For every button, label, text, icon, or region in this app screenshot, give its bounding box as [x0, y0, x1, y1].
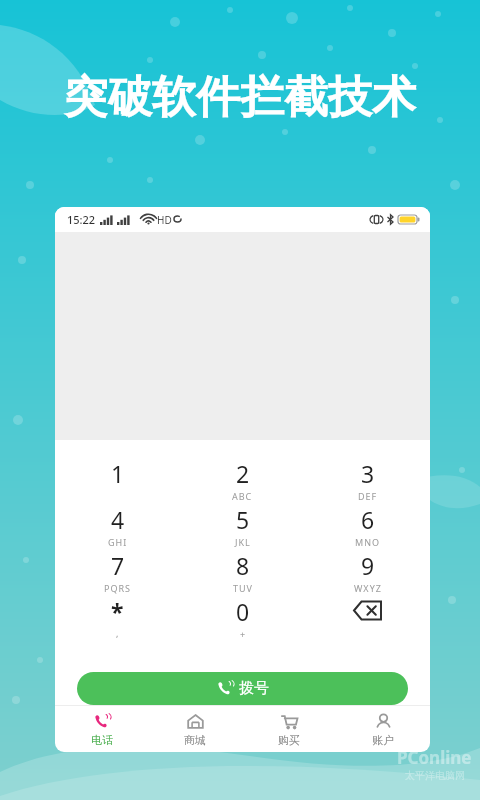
button[interactable]: 9: [305, 550, 430, 596]
staticText: 7: [111, 550, 125, 581]
staticText: 4: [111, 504, 125, 535]
staticText: 电话: [91, 733, 113, 747]
staticText: *: [111, 596, 124, 627]
button[interactable]: 7: [55, 550, 180, 596]
button[interactable]: 0: [180, 596, 305, 642]
staticText: 购买: [278, 733, 300, 747]
staticText: MNO: [355, 536, 381, 548]
staticText: 拨号: [239, 679, 269, 698]
button[interactable]: 拨号: [77, 672, 408, 705]
staticText: 2: [236, 458, 250, 489]
staticText: 1: [111, 458, 125, 489]
button[interactable]: 2: [180, 458, 305, 504]
staticText: PConline: [397, 746, 472, 769]
staticText: 6: [361, 504, 375, 535]
staticText: JKL: [235, 536, 251, 548]
staticText: 突破软件拦截技术: [64, 70, 416, 125]
staticText: 0: [236, 596, 250, 627]
button[interactable]: 3: [305, 458, 430, 504]
staticText: +: [240, 628, 246, 640]
button[interactable]: 5: [180, 504, 305, 550]
button[interactable]: *: [55, 596, 180, 642]
staticText: ,: [116, 627, 119, 639]
staticText: TUV: [233, 582, 253, 594]
staticText: ABC: [232, 490, 253, 502]
staticText: PQRS: [104, 582, 132, 594]
staticText: DEF: [358, 490, 378, 502]
staticText: 9: [361, 550, 375, 581]
staticText: 商城: [184, 733, 206, 747]
staticText: 太平洋电脑网: [405, 769, 465, 782]
staticText: 15:22: [67, 212, 96, 227]
staticText: 账户: [372, 733, 394, 747]
button[interactable]: 4: [55, 504, 180, 550]
staticText: 8: [236, 550, 250, 581]
button[interactable]: 商城: [148, 706, 242, 752]
button[interactable]: 1: [55, 458, 180, 504]
button[interactable]: 8: [180, 550, 305, 596]
button[interactable]: 电话: [55, 706, 148, 752]
staticText: HD: [157, 213, 172, 227]
staticText: 3: [361, 458, 375, 489]
button[interactable]: Backspace: [305, 596, 430, 642]
staticText: GHI: [108, 536, 128, 548]
button[interactable]: 6: [305, 504, 430, 550]
staticText: WXYZ: [354, 582, 382, 594]
button[interactable]: 账户: [336, 706, 430, 752]
button[interactable]: 购买: [242, 706, 336, 752]
staticText: 5: [236, 504, 250, 535]
